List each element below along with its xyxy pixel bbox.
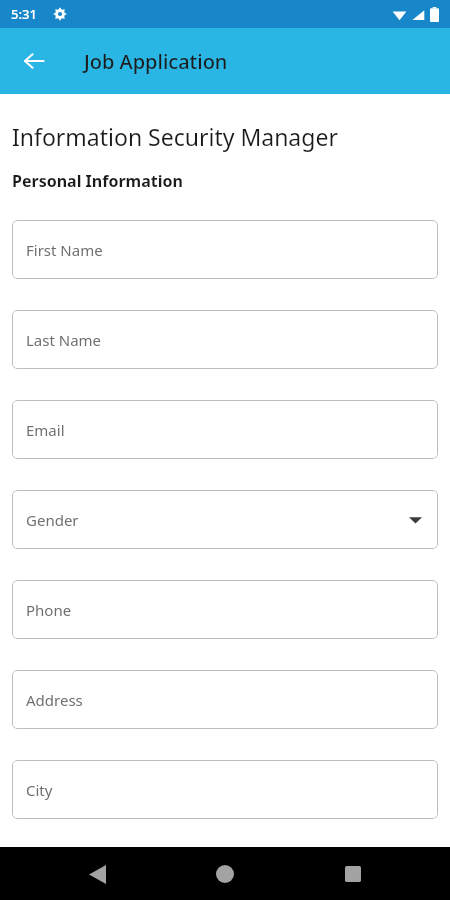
staticText: First Name	[26, 240, 103, 260]
staticText: Address	[26, 690, 83, 710]
staticText: 5:31	[11, 5, 37, 23]
button[interactable]: Gender	[12, 490, 438, 549]
staticText: Information Security Manager	[12, 121, 338, 152]
staticText: Personal Information	[12, 170, 183, 192]
staticText: Phone	[26, 600, 72, 620]
staticText: City	[26, 780, 53, 800]
staticText: Job Application	[84, 48, 228, 75]
button[interactable]: Recents	[340, 861, 366, 887]
staticText: Gender	[26, 510, 79, 530]
staticText: Last Name	[26, 330, 102, 350]
button[interactable]: Phone	[12, 580, 438, 639]
button[interactable]: Address	[12, 670, 438, 729]
button[interactable]: Last Name	[12, 310, 438, 369]
button[interactable]: Home	[212, 861, 238, 887]
button[interactable]: Back	[84, 861, 110, 887]
staticText: Email	[26, 420, 65, 440]
button[interactable]: Email	[12, 400, 438, 459]
button[interactable]: First Name	[12, 220, 438, 279]
button[interactable]: Back	[14, 41, 54, 81]
button[interactable]: City	[12, 760, 438, 819]
